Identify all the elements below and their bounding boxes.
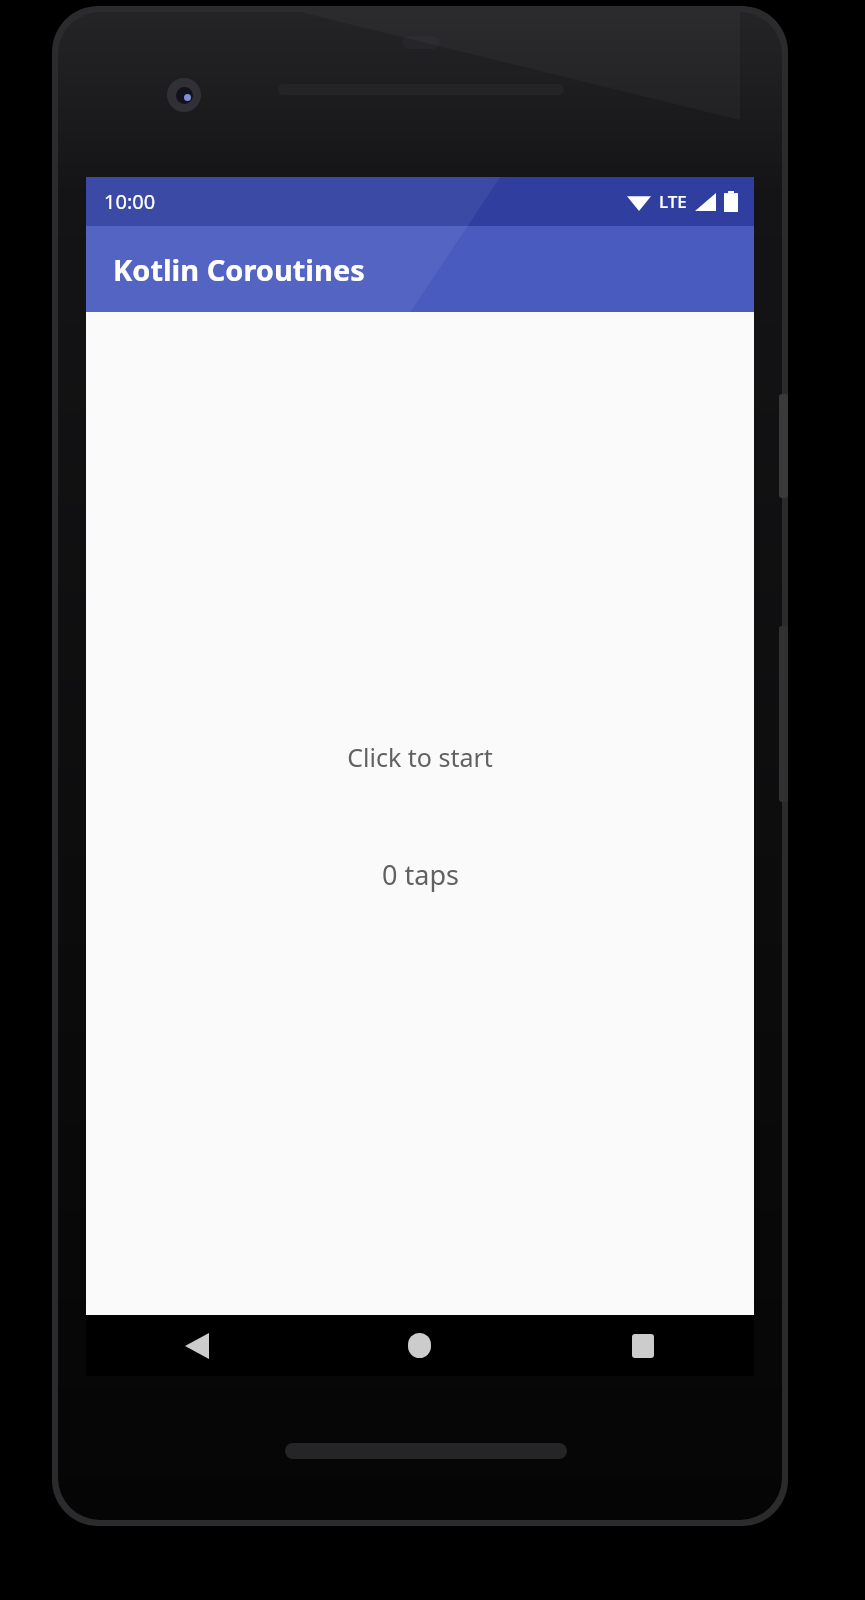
button[interactable]: Recent apps <box>531 1315 754 1376</box>
staticText: 10:00 <box>104 188 156 215</box>
button[interactable]: Back <box>86 1315 308 1376</box>
staticText: Kotlin Coroutines <box>113 250 365 289</box>
staticText: Click to start <box>347 740 493 774</box>
staticText: LTE <box>659 190 687 213</box>
staticText: 0 taps <box>382 856 459 893</box>
button[interactable]: Home <box>308 1315 531 1376</box>
button[interactable]: Click to start <box>323 734 517 780</box>
